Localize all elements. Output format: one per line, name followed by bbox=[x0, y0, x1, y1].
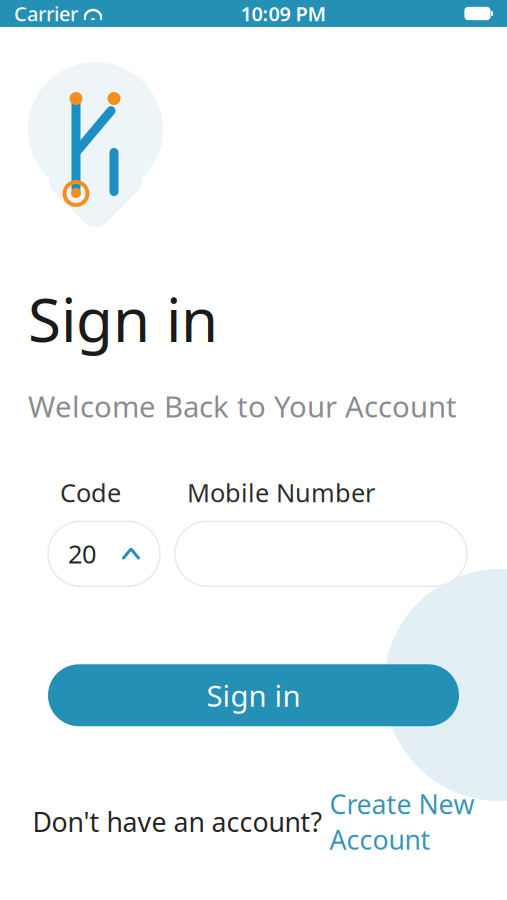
staticText: 20 bbox=[68, 537, 96, 571]
button[interactable]: Mobile Number bbox=[175, 521, 467, 586]
button[interactable]: Sign in bbox=[48, 664, 459, 726]
staticText: Sign in bbox=[206, 676, 300, 715]
staticText: Don't have an account? bbox=[32, 804, 329, 839]
staticText: Welcome Back to Your Account bbox=[28, 387, 457, 426]
button[interactable]: 20 bbox=[48, 521, 160, 586]
staticText: Code bbox=[60, 476, 121, 509]
button[interactable]: Create New Account bbox=[329, 786, 474, 857]
staticText: Mobile Number bbox=[187, 476, 375, 509]
staticText: Sign in bbox=[28, 279, 218, 359]
staticText: 10:09 PM bbox=[240, 0, 326, 27]
staticText: Create New Account bbox=[329, 786, 474, 857]
staticText: Carrier bbox=[14, 0, 78, 27]
